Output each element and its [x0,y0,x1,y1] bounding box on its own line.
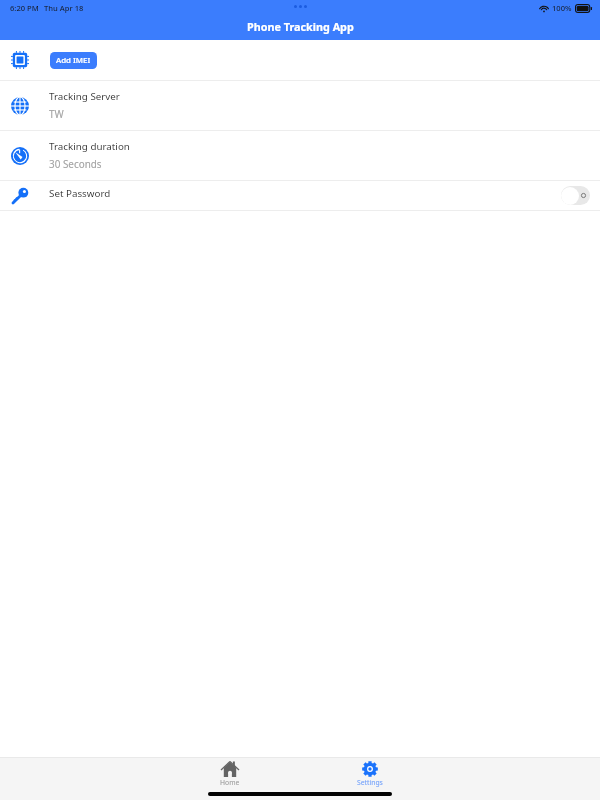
staticText: Phone Tracking App [247,19,354,34]
button[interactable]: Settings [350,761,390,787]
staticText: 30 Seconds [49,157,102,170]
staticText: Settings [357,778,383,787]
button[interactable]: Tracking Server [0,81,600,130]
button[interactable]: Set Password [0,181,600,210]
staticText: Set Password [49,187,111,200]
staticText: Home [220,778,240,787]
staticText: Thu Apr 18 [44,3,84,13]
staticText: 6:20 PM [10,3,39,13]
button[interactable]: Tracking duration [0,131,600,180]
button[interactable]: Add IMEI [50,52,97,69]
button[interactable]: Set Password toggle [561,186,590,205]
staticText: Add IMEI [56,55,91,66]
staticText: TW [49,107,64,120]
staticText: Tracking duration [49,140,130,153]
staticText: 100% [552,3,572,13]
button[interactable]: Home [210,761,250,787]
staticText: Tracking Server [49,90,120,103]
button[interactable]: Add IMEI [0,40,600,80]
